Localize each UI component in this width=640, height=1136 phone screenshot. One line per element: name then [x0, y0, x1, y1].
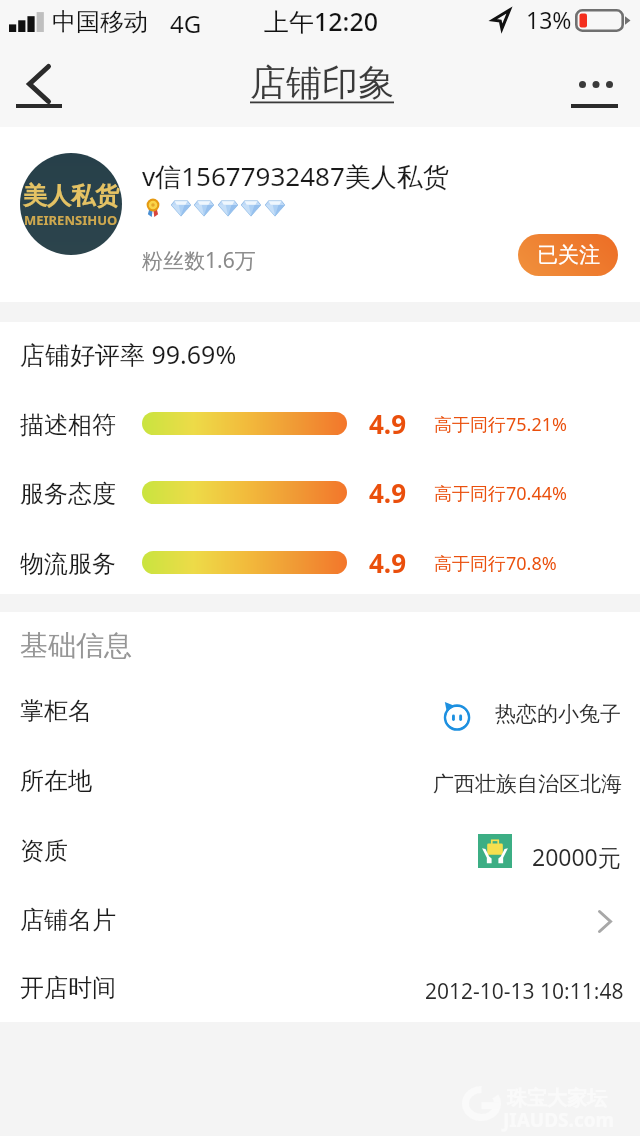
staticText: 20000元	[532, 841, 621, 872]
staticText: 上午12:20	[264, 4, 379, 38]
button[interactable]: 店铺名片	[0, 886, 640, 955]
staticText: 4G	[170, 7, 202, 40]
button[interactable]: Shop avatar	[20, 153, 122, 255]
button[interactable]: 开店时间	[0, 954, 640, 1023]
staticText: 高于同行70.44%	[434, 481, 567, 506]
staticText: 掌柜名	[20, 696, 92, 726]
staticText: 广西壮族自治区北海	[433, 771, 622, 797]
staticText: 美人私货	[23, 181, 119, 211]
button[interactable]: 掌柜名	[0, 677, 640, 746]
button[interactable]: 所在地	[0, 747, 640, 816]
staticText: 店铺名片	[20, 905, 116, 935]
button[interactable]: Back	[0, 50, 78, 127]
button[interactable]: 描述相符	[0, 389, 640, 449]
staticText: v信15677932487美人私货	[142, 158, 449, 194]
staticText: 基础信息	[20, 628, 132, 663]
staticText: 2012-10-13 10:11:48	[425, 977, 624, 1006]
staticText: 资质	[20, 836, 68, 866]
staticText: 13%	[526, 4, 572, 35]
button[interactable]: 服务态度	[0, 458, 640, 518]
staticText: 店铺印象	[250, 60, 394, 105]
staticText: 高于同行70.8%	[434, 551, 557, 576]
staticText: 服务态度	[20, 479, 116, 509]
button[interactable]: 资质	[0, 817, 640, 886]
button[interactable]: 物流服务	[0, 528, 640, 588]
staticText: 粉丝数1.6万	[142, 246, 256, 275]
staticText: 已关注	[537, 242, 600, 268]
staticText: 4.9	[369, 475, 407, 510]
staticText: 描述相符	[20, 410, 116, 440]
button[interactable]: More options	[562, 50, 640, 127]
button[interactable]: 已关注	[518, 234, 618, 276]
staticText: 热恋的小兔子	[495, 701, 621, 727]
staticText: 高于同行75.21%	[434, 412, 567, 437]
staticText: 开店时间	[20, 973, 116, 1003]
staticText: 4.9	[369, 545, 407, 580]
staticText: 店铺好评率 99.69%	[20, 337, 237, 371]
staticText: 所在地	[20, 766, 92, 796]
staticText: 4.9	[369, 406, 407, 441]
staticText: 物流服务	[20, 549, 116, 579]
staticText: MEIRENSIHUO	[24, 211, 118, 229]
staticText: 中国移动	[52, 7, 148, 37]
